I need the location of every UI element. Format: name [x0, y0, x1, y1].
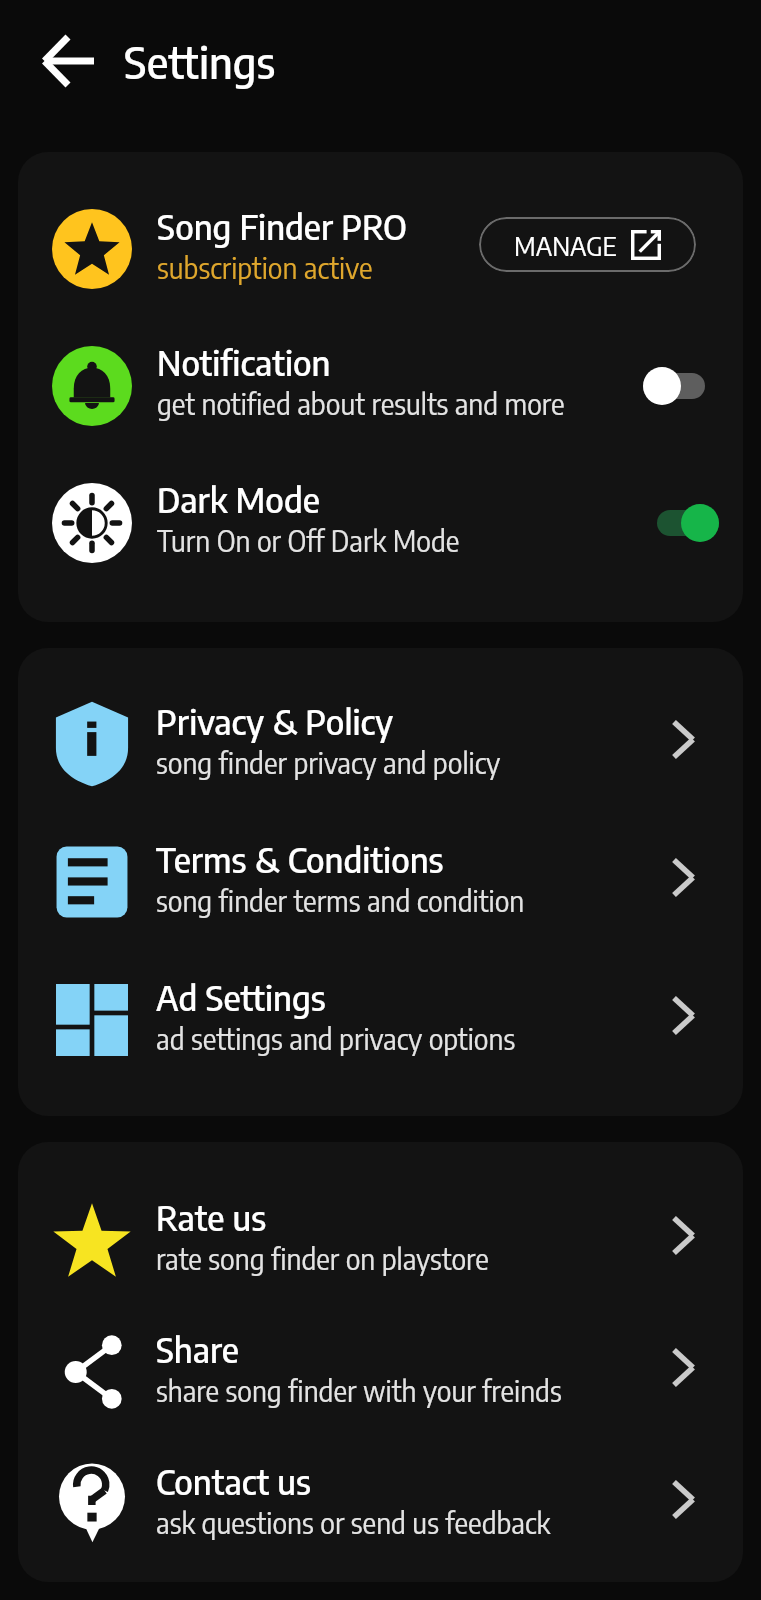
- staticText: rate song finder on playstore: [156, 1241, 489, 1276]
- staticText: song finder terms and condition: [156, 883, 525, 918]
- button[interactable]: Rate us: [18, 1174, 743, 1306]
- staticText: get notified about results and more: [157, 386, 565, 421]
- button[interactable]: Dark Mode: [18, 454, 743, 591]
- staticText: subscription active: [157, 250, 373, 285]
- button[interactable]: Dark Mode: [643, 501, 719, 545]
- button[interactable]: Ad Settings: [18, 951, 743, 1089]
- staticText: MANAGE: [514, 229, 617, 261]
- staticText: Ad Settings: [156, 975, 326, 1019]
- staticText: Rate us: [156, 1195, 267, 1239]
- staticText: Terms & Conditions: [156, 837, 444, 881]
- staticText: Contact us: [156, 1459, 311, 1503]
- button[interactable]: Notification: [643, 364, 719, 408]
- staticText: song finder privacy and policy: [156, 745, 501, 780]
- button[interactable]: Notification: [18, 317, 743, 454]
- staticText: Privacy & Policy: [156, 699, 394, 743]
- button[interactable]: Back: [34, 27, 102, 95]
- button[interactable]: Terms & Conditions: [18, 813, 743, 951]
- button[interactable]: Share: [18, 1306, 743, 1438]
- staticText: Song Finder PRO: [157, 204, 407, 248]
- staticText: Notification: [157, 340, 331, 384]
- staticText: ad settings and privacy options: [156, 1021, 516, 1056]
- button[interactable]: Contact us: [18, 1438, 743, 1570]
- staticText: Dark Mode: [157, 477, 321, 521]
- staticText: Settings: [124, 34, 276, 89]
- button[interactable]: MANAGE: [479, 217, 696, 272]
- button[interactable]: Privacy & Policy: [18, 675, 743, 813]
- staticText: ask questions or send us feedback: [156, 1505, 551, 1540]
- button[interactable]: Song Finder PRO: [18, 181, 743, 317]
- staticText: share song finder with your freinds: [156, 1373, 562, 1408]
- staticText: Turn On or Off Dark Mode: [157, 523, 460, 558]
- staticText: Share: [156, 1327, 239, 1371]
